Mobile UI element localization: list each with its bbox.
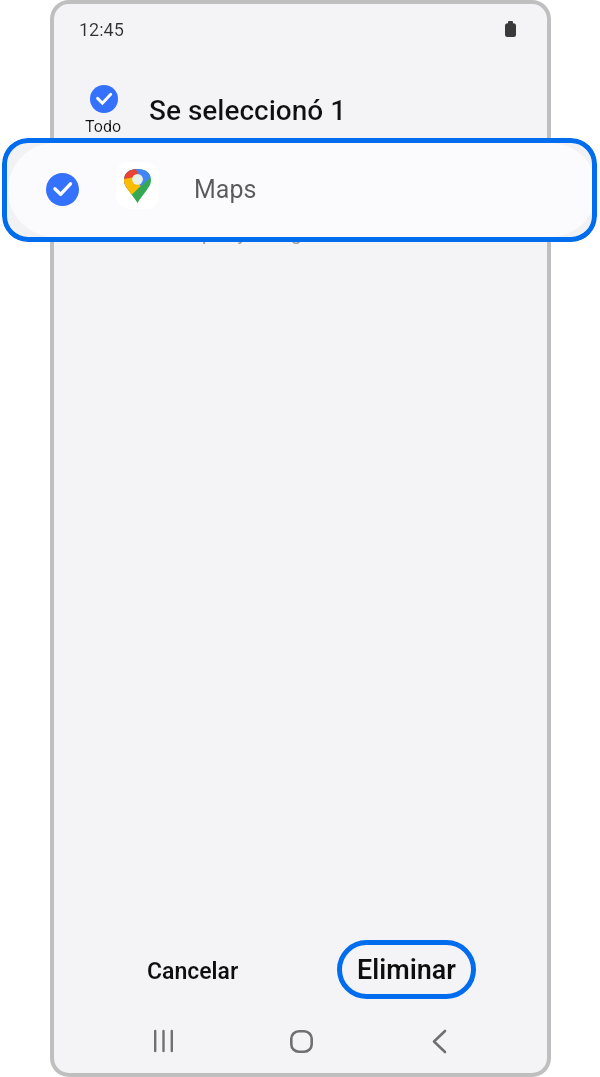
staticText: Aplicaciones: [128, 134, 243, 157]
button[interactable]: Eliminar: [337, 940, 476, 999]
staticText: Maps: [194, 175, 257, 204]
button[interactable]: Home: [278, 1020, 324, 1062]
button[interactable]: Recents: [140, 1020, 186, 1062]
staticText: Cancelar: [147, 958, 239, 985]
staticText: Mapas y navegación: [175, 222, 348, 244]
button[interactable]: Todo: [85, 85, 122, 136]
button[interactable]: Maps: [2, 138, 597, 242]
button[interactable]: Cancelar: [138, 942, 248, 1001]
staticText: 12:45: [79, 19, 124, 40]
staticText: Todo: [85, 117, 122, 136]
staticText: Eliminar: [357, 954, 457, 986]
staticText: Se seleccionó 1: [149, 94, 347, 127]
button[interactable]: Back: [416, 1020, 462, 1062]
